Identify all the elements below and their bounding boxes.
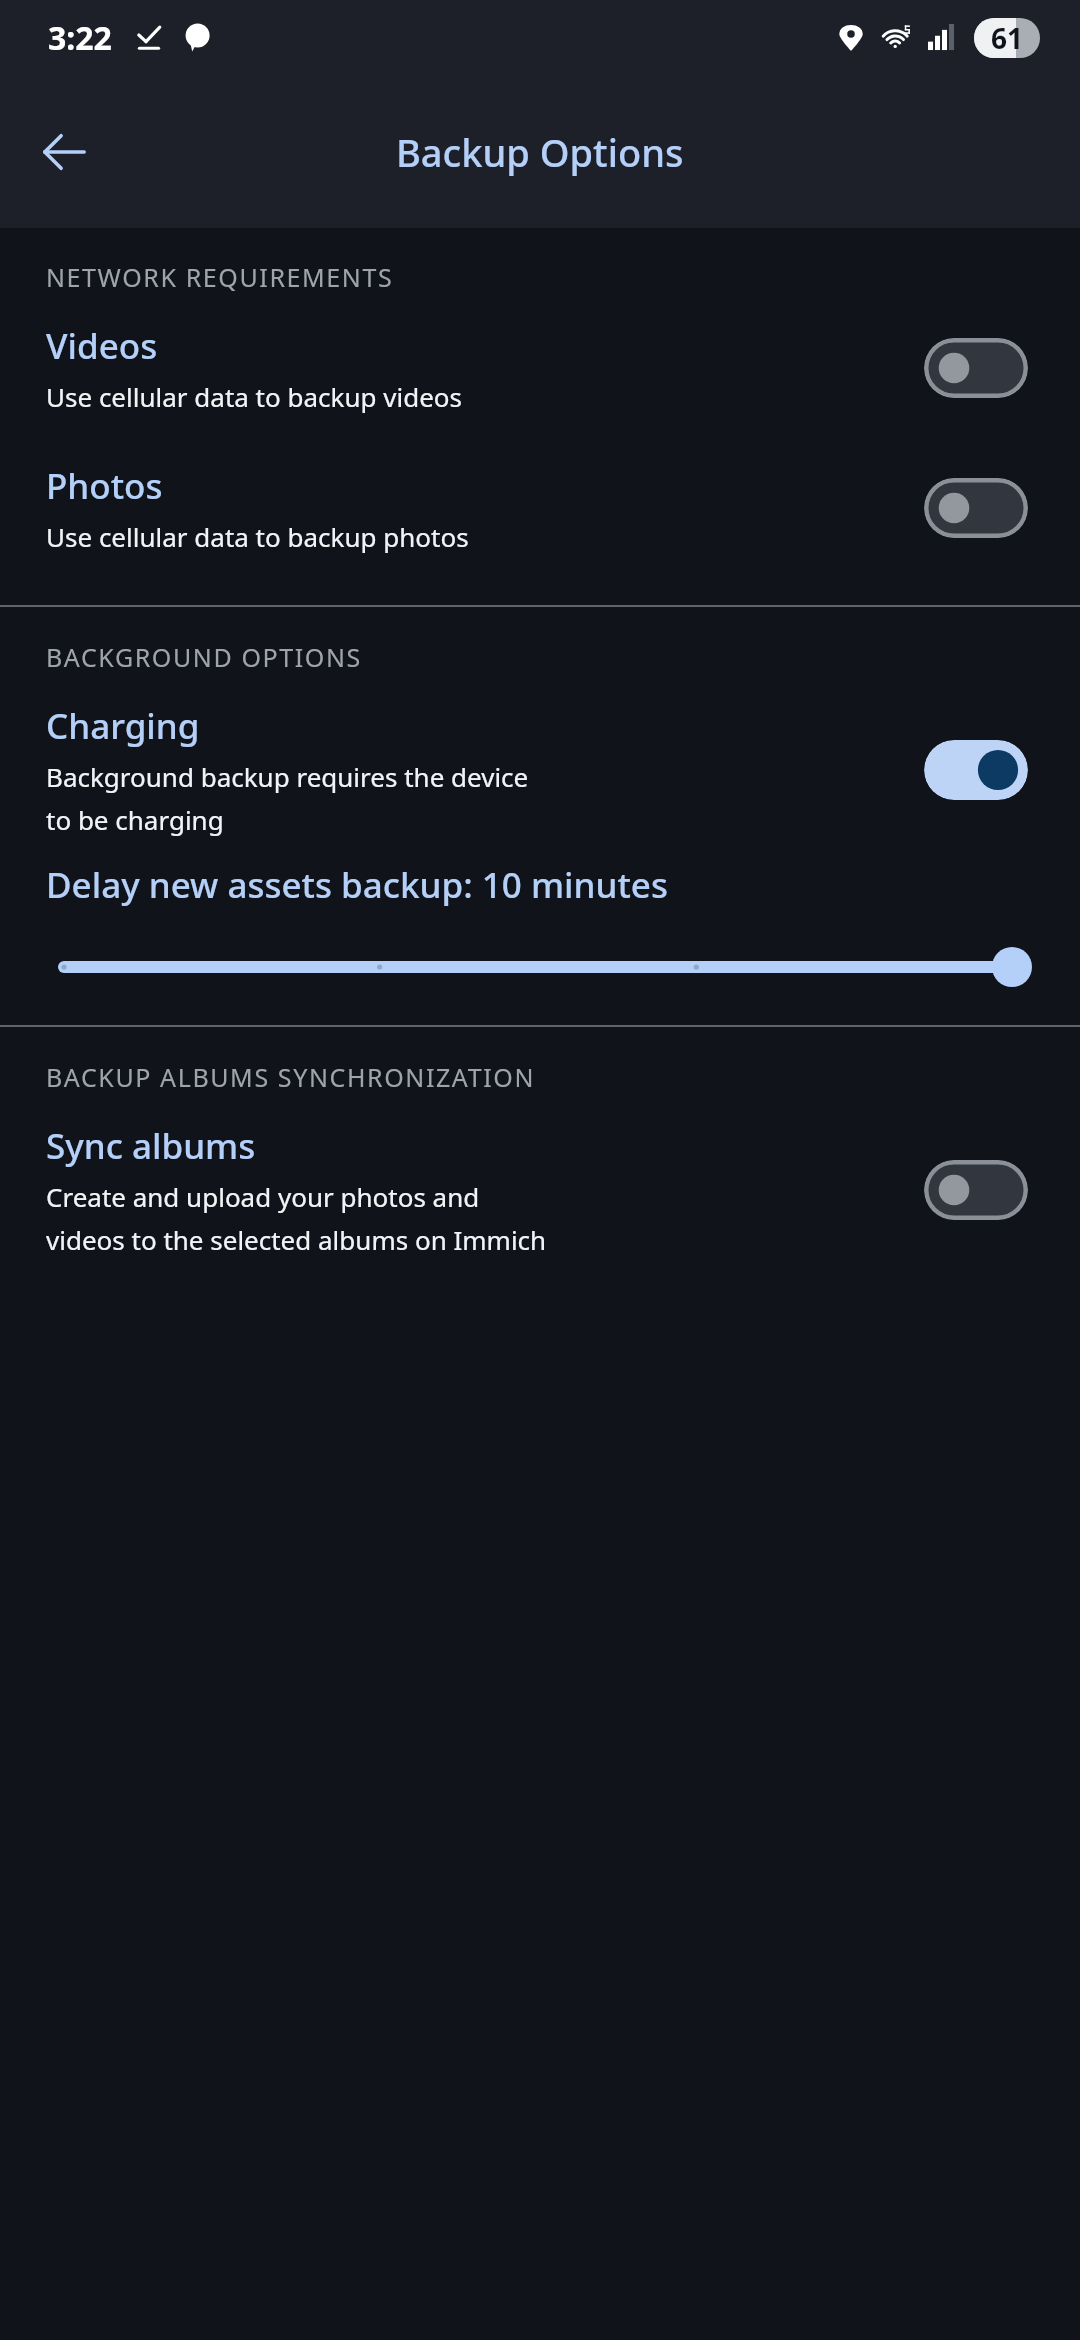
staticText: BACKUP ALBUMS SYNCHRONIZATION	[46, 1060, 535, 1094]
button[interactable]: Back	[26, 114, 102, 190]
staticText: Videos	[46, 322, 158, 370]
button[interactable]: Photos	[0, 456, 1080, 560]
staticText: Backup Options	[396, 126, 684, 178]
staticText: videos to the selected albums on Immich	[46, 1222, 547, 1257]
button[interactable]: Charging	[0, 696, 1080, 843]
button[interactable]: Videos	[0, 316, 1080, 420]
button[interactable]: Toggle off	[924, 338, 1028, 398]
staticText: to be charging	[46, 802, 224, 837]
button[interactable]: Toggle off	[924, 478, 1028, 538]
button[interactable]: Delay slider	[0, 939, 1080, 995]
staticText: BACKGROUND OPTIONS	[46, 640, 362, 674]
staticText: Sync albums	[46, 1122, 256, 1170]
button[interactable]: Toggle on	[924, 740, 1028, 800]
staticText: Use cellular data to backup photos	[46, 519, 469, 554]
staticText: 3:22	[48, 16, 112, 60]
staticText: Use cellular data to backup videos	[46, 379, 463, 414]
button[interactable]: Toggle off	[924, 1160, 1028, 1220]
button[interactable]: Sync albums	[0, 1116, 1080, 1263]
staticText: Charging	[46, 702, 200, 750]
staticText: Delay new assets backup: 10 minutes	[46, 861, 668, 909]
staticText: 61	[991, 19, 1024, 57]
staticText: Photos	[46, 462, 163, 510]
staticText: Create and upload your photos and	[46, 1179, 480, 1214]
staticText: NETWORK REQUIREMENTS	[46, 260, 394, 294]
staticText: Background backup requires the device	[46, 759, 529, 794]
